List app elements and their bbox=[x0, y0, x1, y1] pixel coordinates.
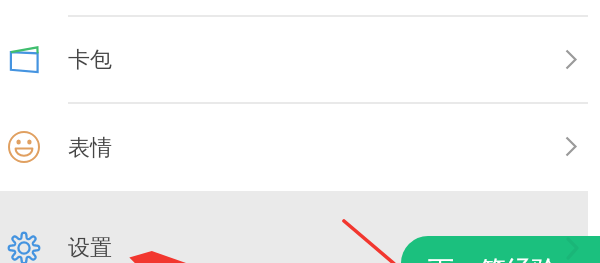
button[interactable]: 卡包 bbox=[0, 16, 588, 103]
button[interactable]: 下一篇经验 bbox=[401, 236, 600, 263]
other: 设置 bbox=[0, 191, 588, 263]
button[interactable]: 表情 bbox=[0, 103, 588, 191]
staticText: 表情 bbox=[68, 134, 112, 162]
staticText: 设置 bbox=[68, 234, 112, 262]
staticText: 下一篇经验 bbox=[428, 254, 558, 263]
other: 表情 bbox=[0, 103, 588, 191]
other: 卡包 bbox=[0, 16, 588, 103]
staticText: 卡包 bbox=[68, 46, 112, 74]
button[interactable]: 设置 bbox=[0, 191, 588, 263]
